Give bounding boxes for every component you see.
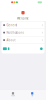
staticText: Notifications <box>6 31 23 34</box>
button[interactable]: Home <box>8 91 18 97</box>
button[interactable]: General <box>1 21 44 29</box>
staticText: About <box>6 38 15 42</box>
staticText: General <box>6 23 17 27</box>
button[interactable]: Me <box>27 91 37 97</box>
staticText: Welcome <box>17 17 29 20</box>
button[interactable]: About <box>1 36 44 44</box>
button[interactable] <box>1 44 44 53</box>
button[interactable]: Notifications <box>1 29 44 36</box>
staticText: Home <box>11 95 15 97</box>
staticText: Me <box>31 95 33 97</box>
